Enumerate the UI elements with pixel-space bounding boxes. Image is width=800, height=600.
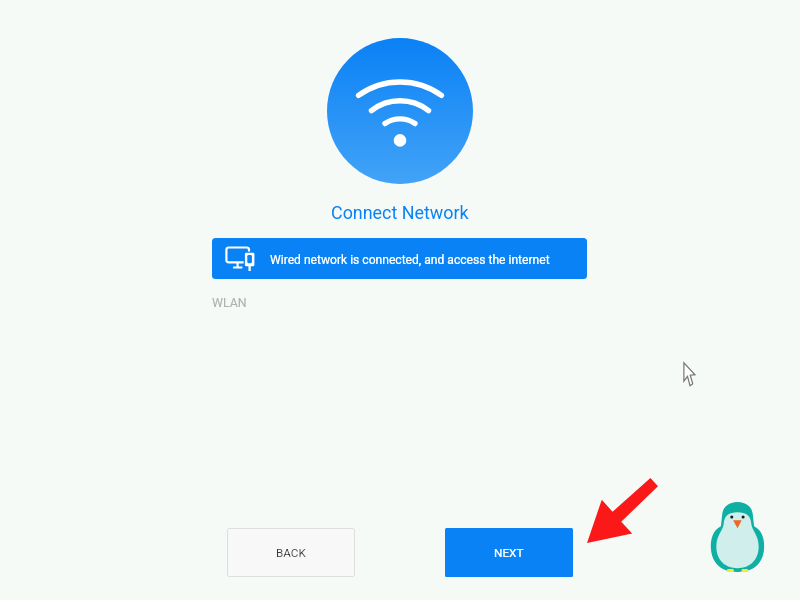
staticText: Wired network is connected, and access t… — [270, 253, 550, 267]
button[interactable]: Wired network is connected, and access t… — [212, 238, 587, 279]
staticText: NEXT — [494, 546, 524, 560]
other: Penguin mascot — [710, 502, 765, 572]
staticText: BACK — [276, 546, 306, 560]
staticText: Connect Network — [331, 202, 469, 223]
other: Pointer arrow — [587, 478, 658, 543]
button[interactable]: BACK — [227, 528, 355, 577]
button[interactable]: NEXT — [445, 528, 573, 577]
staticText: WLAN — [212, 295, 247, 310]
